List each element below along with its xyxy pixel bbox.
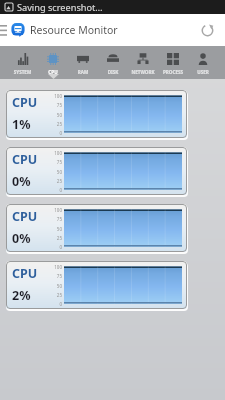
button[interactable]: USER xyxy=(188,46,218,79)
staticText: DISK xyxy=(98,69,128,75)
staticText: USER xyxy=(188,69,218,75)
staticText: NETWORK xyxy=(128,69,158,75)
staticText: CPU xyxy=(12,265,38,282)
staticText: 50 xyxy=(48,283,62,289)
button[interactable]: CPU xyxy=(38,46,68,79)
button[interactable]: CPU xyxy=(6,204,188,254)
staticText: CPU xyxy=(12,151,38,168)
staticText: 0% xyxy=(12,230,31,247)
staticText: 25 xyxy=(48,292,62,298)
staticText: 50 xyxy=(48,226,62,232)
staticText: Resource Monitor xyxy=(30,23,118,37)
button[interactable]: CPU xyxy=(6,147,188,197)
staticText: 75 xyxy=(48,273,62,279)
staticText: 0 xyxy=(48,187,62,193)
staticText: 100 xyxy=(48,207,62,213)
staticText: 25 xyxy=(48,178,62,184)
staticText: 25 xyxy=(48,121,62,127)
staticText: CPU xyxy=(38,69,68,75)
button[interactable]: Refresh xyxy=(194,17,220,43)
button[interactable]: DISK xyxy=(98,46,128,79)
staticText: RAM xyxy=(68,69,98,75)
staticText: CPU xyxy=(12,94,38,111)
staticText: 75 xyxy=(48,159,62,165)
staticText: 50 xyxy=(48,112,62,118)
staticText: CPU xyxy=(12,208,38,225)
staticText: 75 xyxy=(48,216,62,222)
button[interactable]: CPU xyxy=(6,90,188,140)
button[interactable]: CPU xyxy=(6,261,188,311)
staticText: 75 xyxy=(48,102,62,108)
button[interactable]: SYSTEM xyxy=(7,46,38,79)
staticText: 0 xyxy=(48,244,62,250)
staticText: 50 xyxy=(48,169,62,175)
staticText: 1% xyxy=(12,116,31,133)
staticText: 100 xyxy=(48,264,62,270)
staticText: 100 xyxy=(48,150,62,156)
staticText: 0 xyxy=(48,130,62,136)
button[interactable]: Open navigation menu xyxy=(0,14,8,46)
staticText: Saving screenshot… xyxy=(17,1,103,14)
button[interactable]: NETWORK xyxy=(128,46,158,79)
button[interactable]: RAM xyxy=(68,46,98,79)
staticText: 0 xyxy=(48,301,62,307)
staticText: 100 xyxy=(48,93,62,99)
staticText: 25 xyxy=(48,235,62,241)
button[interactable]: PROCESS xyxy=(158,46,188,79)
staticText: 0% xyxy=(12,173,31,190)
staticText: 2% xyxy=(12,287,31,304)
staticText: PROCESS xyxy=(158,69,188,75)
staticText: SYSTEM xyxy=(7,69,38,75)
